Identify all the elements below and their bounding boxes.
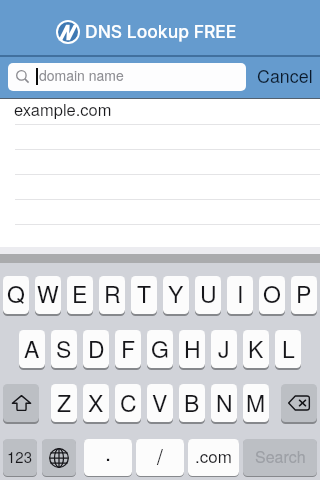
staticText: I <box>237 277 244 310</box>
button[interactable]: 123 <box>3 439 37 476</box>
staticText: Cancel <box>257 62 313 88</box>
staticText: domain name <box>39 65 124 85</box>
button[interactable] <box>8 63 246 91</box>
button[interactable]: Z <box>51 384 77 422</box>
staticText: E <box>72 277 88 310</box>
staticText: O <box>263 277 281 310</box>
staticText: .com <box>195 443 232 467</box>
button[interactable]: K <box>243 330 269 368</box>
button[interactable]: R <box>99 276 125 314</box>
staticText: V <box>152 386 168 419</box>
staticText: A <box>24 332 40 365</box>
button[interactable]: / <box>136 439 184 476</box>
button[interactable]: F <box>115 330 141 368</box>
button[interactable]: P <box>291 276 317 314</box>
staticText: / <box>157 441 163 471</box>
staticText: M <box>246 386 266 419</box>
staticText: J <box>218 332 230 365</box>
staticText: Z <box>57 386 72 419</box>
button[interactable]: I <box>227 276 253 314</box>
staticText: X <box>88 386 104 419</box>
staticText: B <box>184 386 200 419</box>
staticText: W <box>37 277 59 310</box>
button[interactable]: C <box>115 384 141 422</box>
staticText: R <box>104 277 121 310</box>
button[interactable]: J <box>211 330 237 368</box>
button[interactable]: H <box>179 330 205 368</box>
button[interactable]: G <box>147 330 173 368</box>
button[interactable]: B <box>179 384 205 422</box>
button[interactable]: X <box>83 384 109 422</box>
button[interactable]: N <box>211 384 237 422</box>
staticText: Y <box>168 277 184 310</box>
button[interactable]: E <box>67 276 93 314</box>
button[interactable]: .com <box>188 439 239 476</box>
staticText: . <box>105 439 112 468</box>
button[interactable]: A <box>19 330 45 368</box>
button[interactable]: V <box>147 384 173 422</box>
staticText: DNS Lookup FREE <box>85 21 237 42</box>
button[interactable]: Switch keyboard <box>42 439 76 476</box>
staticText: D <box>88 332 105 365</box>
button[interactable]: Y <box>163 276 189 314</box>
staticText: 123 <box>7 446 33 467</box>
staticText: G <box>151 332 169 365</box>
staticText: F <box>121 332 136 365</box>
button[interactable]: S <box>51 330 77 368</box>
staticText: S <box>56 332 72 365</box>
button[interactable] <box>0 99 320 124</box>
button[interactable]: D <box>83 330 109 368</box>
staticText: N <box>216 386 233 419</box>
staticText: P <box>296 277 312 310</box>
button[interactable]: Backspace <box>281 384 317 422</box>
button[interactable]: W <box>35 276 61 314</box>
staticText: Q <box>7 277 25 310</box>
staticText: T <box>137 277 152 310</box>
staticText: K <box>248 332 264 365</box>
staticText: example.com <box>14 97 112 121</box>
button[interactable]: T <box>131 276 157 314</box>
button[interactable]: Shift <box>3 384 39 422</box>
button[interactable]: O <box>259 276 285 314</box>
staticText: U <box>200 277 217 310</box>
staticText: L <box>282 332 295 365</box>
staticText: C <box>120 386 137 419</box>
button[interactable]: Search <box>243 439 317 476</box>
staticText: Search <box>255 445 306 468</box>
button[interactable]: U <box>195 276 221 314</box>
staticText: H <box>184 332 201 365</box>
button[interactable]: . <box>84 439 132 476</box>
button[interactable]: Cancel <box>251 60 317 94</box>
button[interactable]: L <box>275 330 301 368</box>
button[interactable]: M <box>243 384 269 422</box>
button[interactable]: Q <box>3 276 29 314</box>
